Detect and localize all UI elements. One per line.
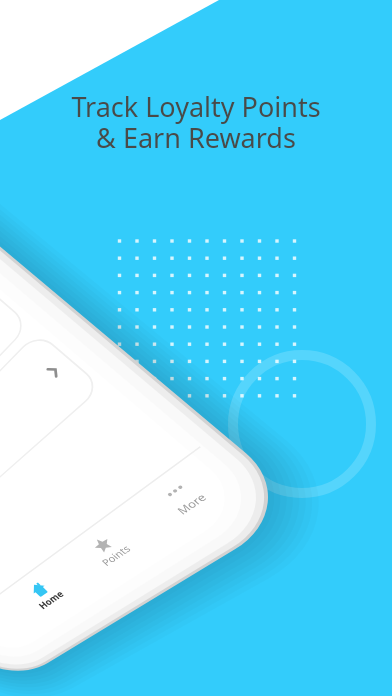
staticText: Track Loyalty Points & Earn Rewards	[71, 88, 321, 156]
